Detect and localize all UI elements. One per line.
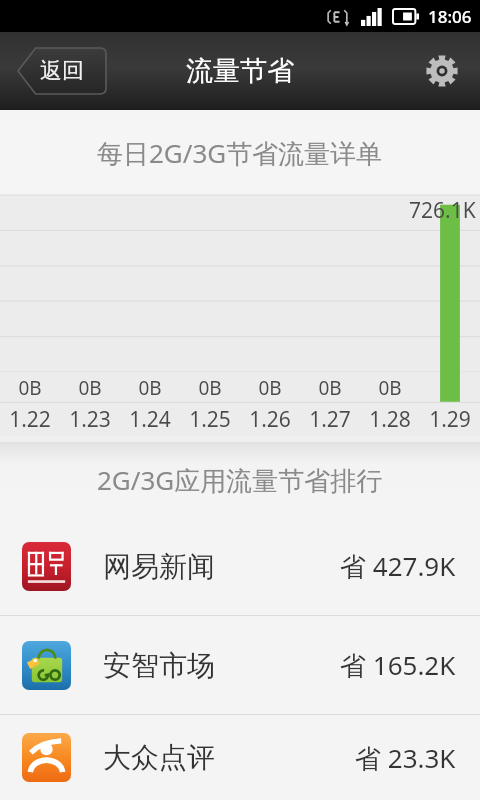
button[interactable]: 返回 <box>18 48 106 94</box>
staticText: 省 23.3K <box>355 740 456 776</box>
button[interactable]: 网易新闻 <box>0 517 480 615</box>
staticText: 流量节省 <box>186 54 294 88</box>
staticText: 大众点评 <box>103 740 215 775</box>
staticText: 18:06 <box>428 5 472 28</box>
button[interactable]: Settings <box>416 45 468 97</box>
staticText: 1.29 <box>429 405 471 434</box>
staticText: 1.22 <box>9 405 51 434</box>
staticText: 网易新闻 <box>103 549 215 584</box>
staticText: 1.28 <box>369 405 411 434</box>
staticText: 0B <box>78 375 102 401</box>
button[interactable]: 大众点评 <box>0 715 480 800</box>
staticText: 1.27 <box>309 405 351 434</box>
staticText: 省 427.9K <box>340 548 456 584</box>
staticText: 0B <box>258 375 282 401</box>
staticText: 0B <box>318 375 342 401</box>
staticText: 1.23 <box>69 405 111 434</box>
staticText: 1.25 <box>189 405 231 434</box>
staticText: 1.24 <box>129 405 171 434</box>
staticText: 安智市场 <box>103 648 215 683</box>
staticText: 每日2G/3G节省流量详单 <box>97 135 383 171</box>
staticText: 0B <box>378 375 402 401</box>
staticText: 0B <box>18 375 42 401</box>
staticText: 726.1K <box>409 196 476 225</box>
staticText: 0B <box>138 375 162 401</box>
staticText: 2G/3G应用流量节省排行 <box>97 462 383 498</box>
button[interactable]: 安智市场 <box>0 616 480 714</box>
staticText: 0B <box>198 375 222 401</box>
staticText: 返回 <box>40 57 84 85</box>
staticText: 1.26 <box>249 405 291 434</box>
staticText: 省 165.2K <box>340 647 456 683</box>
